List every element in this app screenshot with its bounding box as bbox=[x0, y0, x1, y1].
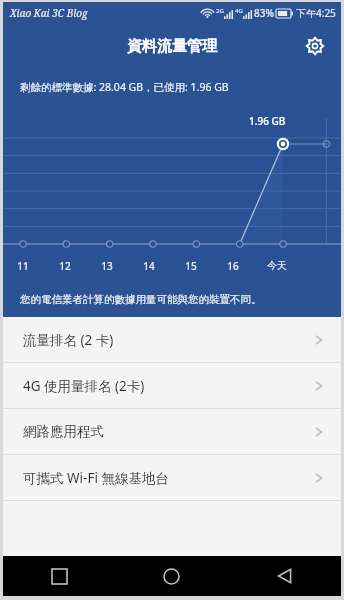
button[interactable]: 4G 使用量排名 (2卡) bbox=[3, 363, 341, 408]
staticText: 流量排名 (2 卡) bbox=[23, 331, 114, 349]
staticText: 資料流量管理 bbox=[127, 37, 217, 56]
staticText: 16 bbox=[227, 259, 239, 273]
staticText: 83% bbox=[254, 6, 274, 20]
button[interactable]: Settings bbox=[301, 32, 329, 60]
staticText: 13 bbox=[101, 259, 113, 273]
staticText: 12 bbox=[59, 259, 71, 273]
staticText: 11 bbox=[17, 259, 29, 273]
staticText: 2G bbox=[216, 7, 224, 15]
staticText: 4G 使用量排名 (2卡) bbox=[23, 377, 145, 395]
button[interactable]: Back bbox=[228, 556, 341, 596]
staticText: 今天 bbox=[267, 259, 287, 272]
staticText: 可攜式 Wi-Fi 無線基地台 bbox=[23, 469, 169, 487]
button[interactable]: 流量排名 (2 卡) bbox=[3, 317, 341, 362]
staticText: 剩餘的標準數據: 28.04 GB，已使用: 1.96 GB bbox=[20, 80, 229, 94]
staticText: 15 bbox=[185, 259, 197, 273]
staticText: 網路應用程式 bbox=[23, 423, 104, 440]
staticText: Xiao Kai 3C Blog bbox=[10, 6, 88, 20]
staticText: 4G bbox=[235, 7, 243, 15]
staticText: 1.96 GB bbox=[249, 114, 286, 128]
staticText: 下午4:25 bbox=[296, 6, 336, 20]
button[interactable]: Home bbox=[115, 556, 228, 596]
button[interactable]: 網路應用程式 bbox=[3, 409, 341, 454]
button[interactable]: Recent apps bbox=[3, 556, 115, 596]
staticText: 您的電信業者計算的數據用量可能與您的裝置不同。 bbox=[20, 293, 262, 306]
button[interactable]: 可攜式 Wi-Fi 無線基地台 bbox=[3, 455, 341, 500]
staticText: 14 bbox=[143, 259, 155, 273]
